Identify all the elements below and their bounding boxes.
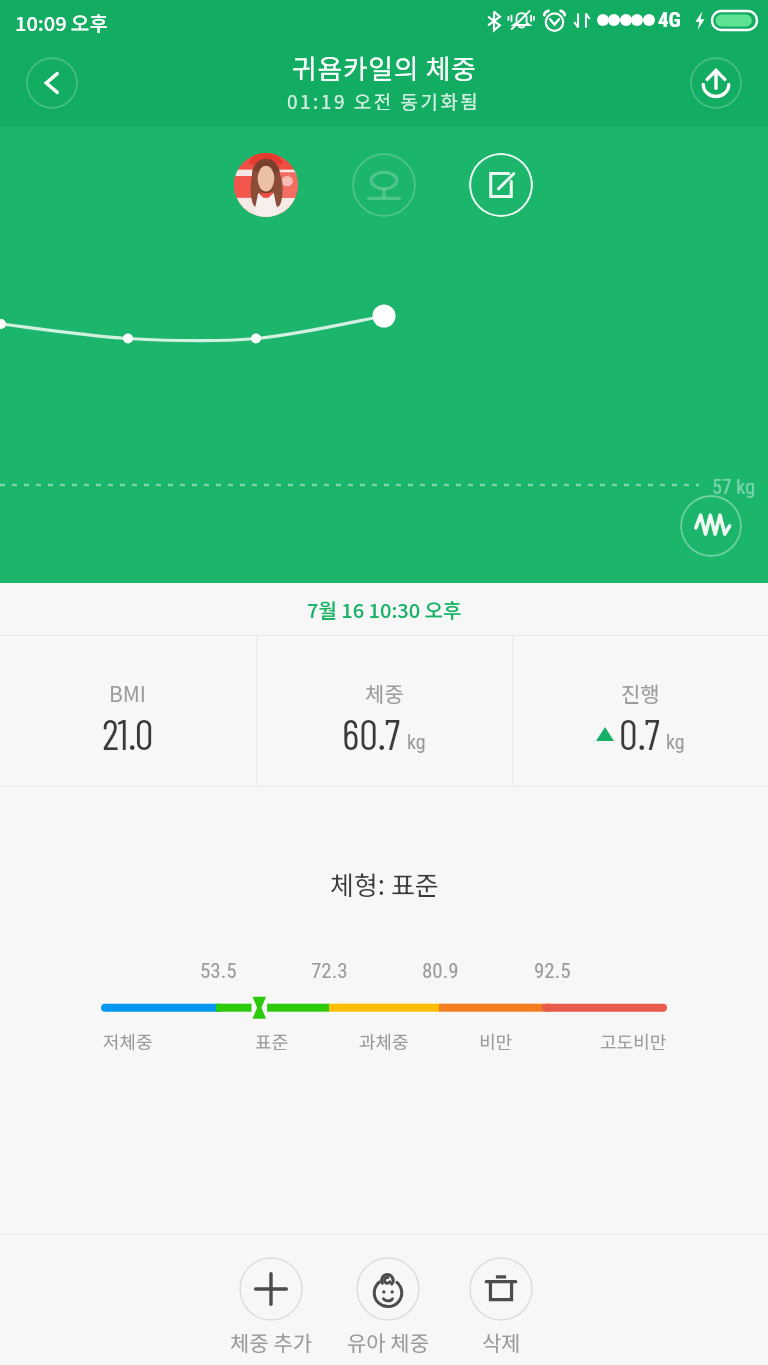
- staticText: 유아 체중: [347, 1327, 429, 1357]
- button[interactable]: Body composition: [680, 495, 742, 557]
- staticText: 체중: [365, 678, 404, 708]
- staticText: 01:19 오전 동기화됨: [287, 87, 481, 115]
- staticText: 체중 추가: [230, 1327, 312, 1357]
- staticText: 삭제: [482, 1327, 521, 1357]
- staticText: 0.7: [619, 708, 660, 758]
- staticText: 57 kg: [712, 475, 756, 498]
- staticText: 53.5: [200, 959, 237, 984]
- staticText: 비만: [479, 1028, 513, 1054]
- button[interactable]: 7월 16 10:30 오후: [0, 583, 768, 635]
- staticText: 체형: 표준: [330, 865, 439, 903]
- staticText: 4G: [658, 8, 681, 33]
- staticText: 진행: [621, 678, 660, 708]
- staticText: 7월 16 10:30 오후: [307, 595, 462, 624]
- staticText: BMI: [109, 678, 147, 708]
- staticText: 60.7: [342, 708, 401, 758]
- button[interactable]: Back: [26, 57, 78, 109]
- button[interactable]: 체중: [256, 636, 512, 786]
- staticText: kg: [407, 730, 426, 753]
- staticText: 72.3: [311, 959, 348, 984]
- button[interactable]: 유아 체중: [332, 1257, 444, 1357]
- button[interactable]: 체중 추가: [215, 1257, 327, 1357]
- staticText: 21.0: [102, 708, 154, 758]
- staticText: 80.9: [422, 959, 459, 984]
- staticText: 고도비만: [600, 1028, 667, 1054]
- button[interactable]: Profile: [234, 153, 298, 217]
- button[interactable]: Edit: [469, 153, 533, 217]
- button[interactable]: 삭제: [445, 1257, 557, 1357]
- button[interactable]: Measure: [352, 153, 416, 217]
- button[interactable]: 진행: [512, 636, 768, 786]
- button[interactable]: BMI: [0, 636, 256, 786]
- staticText: 92.5: [534, 959, 571, 984]
- staticText: 표준: [255, 1028, 289, 1054]
- staticText: 귀욤카일의 체중: [292, 48, 477, 87]
- staticText: kg: [666, 730, 685, 753]
- staticText: 저체중: [103, 1028, 153, 1054]
- staticText: 10:09 오후: [15, 8, 108, 37]
- button[interactable]: Share: [690, 57, 742, 109]
- staticText: 과체중: [359, 1028, 409, 1054]
